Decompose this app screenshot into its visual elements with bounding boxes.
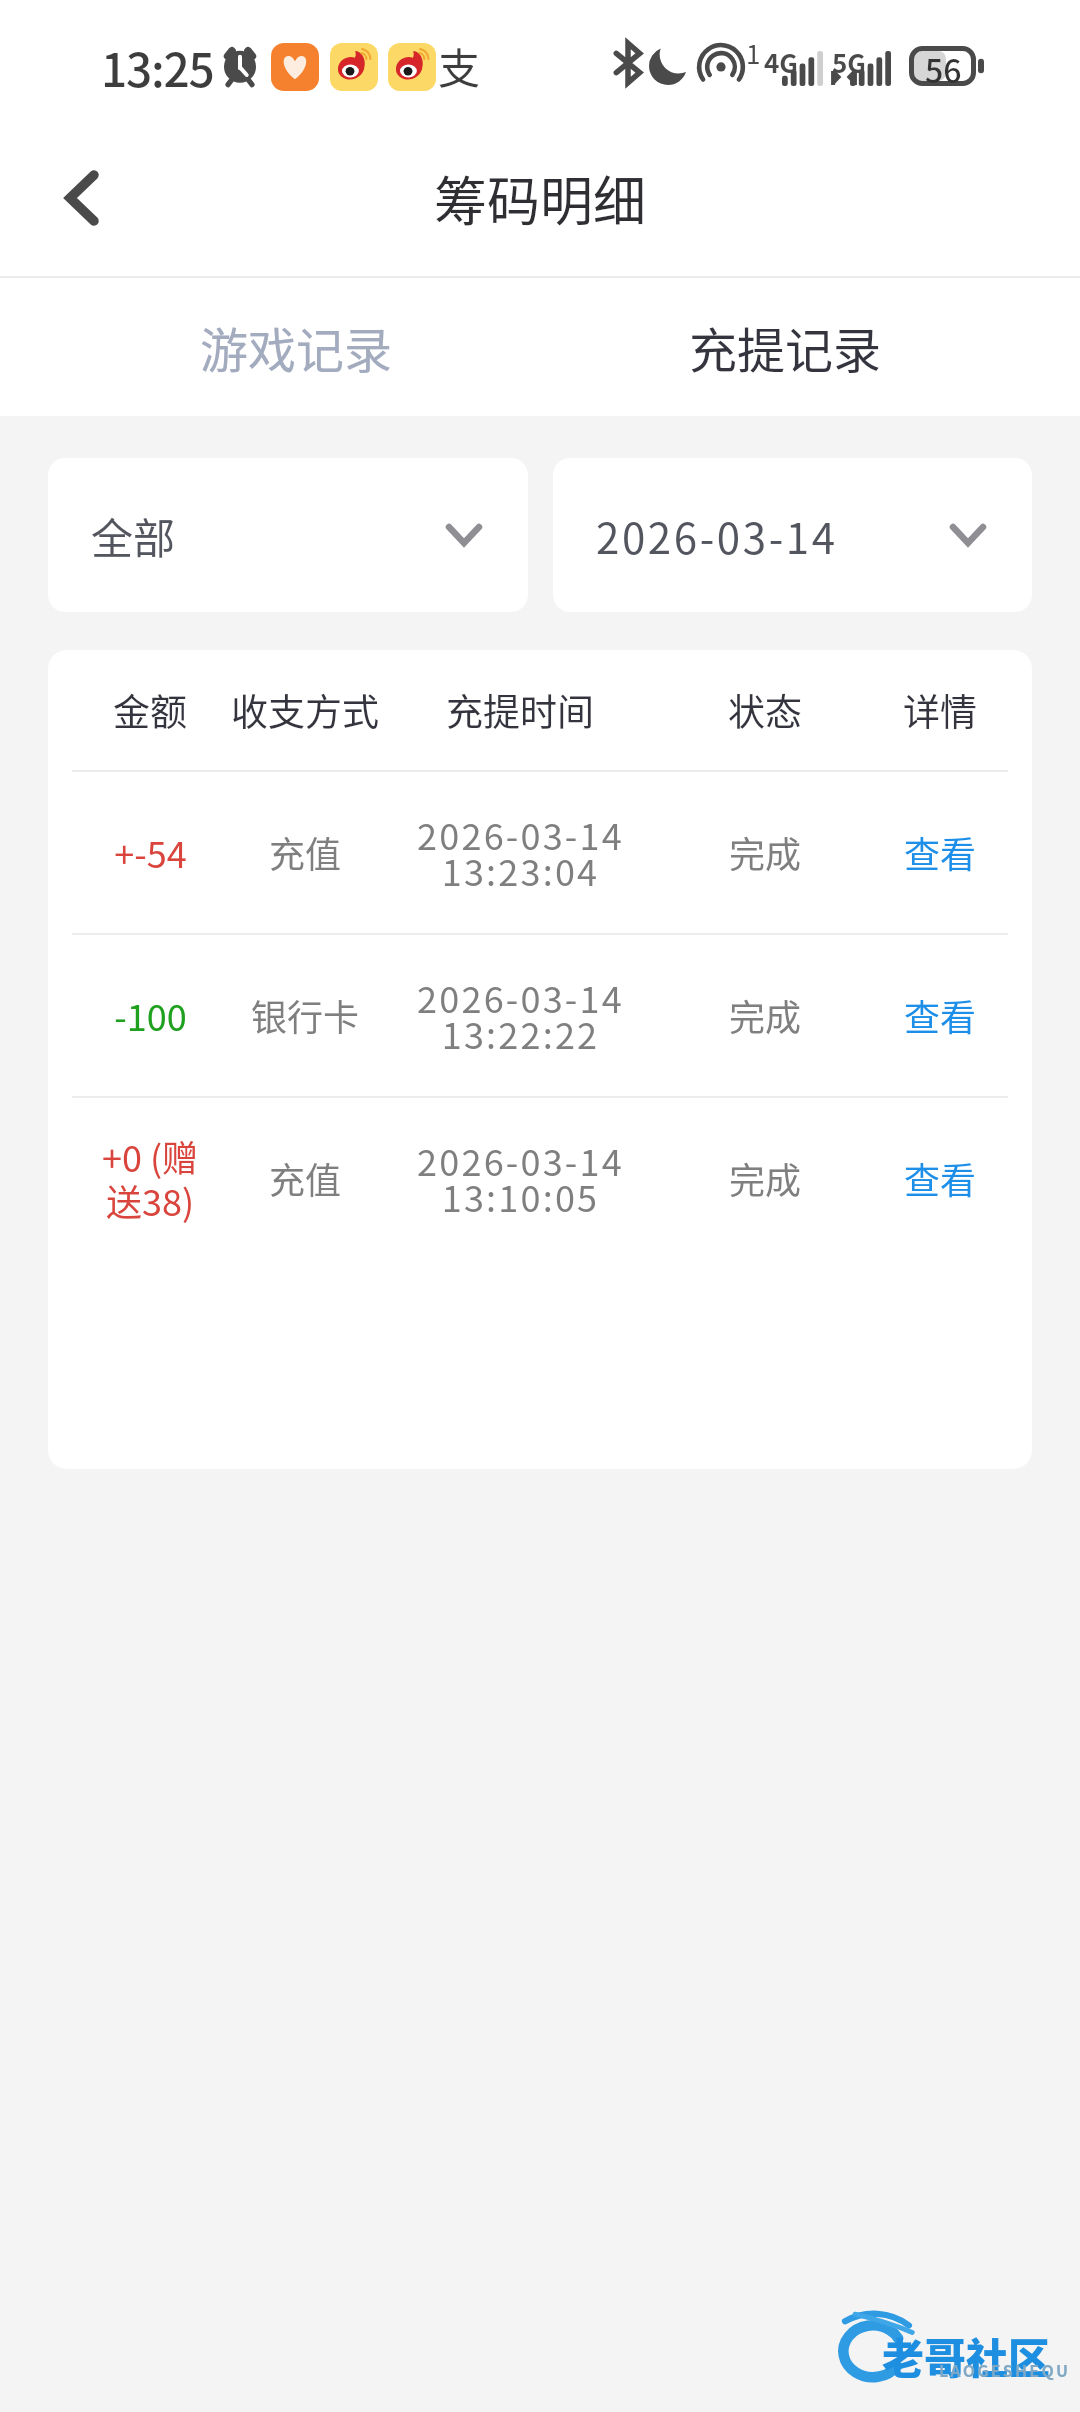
staticText: LAOGESHEQU (939, 2358, 1071, 2381)
staticText: +-54 (114, 826, 187, 878)
staticText: 查看 (904, 826, 977, 878)
staticText: 查看 (904, 989, 977, 1041)
staticText: 2026-03-14 13:10:05 (417, 1134, 624, 1222)
staticText: 2026-03-14 (596, 505, 838, 566)
button[interactable]: 查看 (880, 1134, 1001, 1222)
staticText: 状态 (728, 683, 802, 737)
staticText: 全部 (91, 505, 176, 566)
staticText: 支 (438, 35, 481, 96)
staticText: 收支方式 (231, 683, 379, 737)
staticText: 1 (746, 34, 761, 72)
button[interactable]: 2026-03-14 (553, 458, 1032, 612)
staticText: 筹码明细 (434, 160, 646, 237)
button[interactable]: 充提记录 (540, 278, 1080, 416)
button[interactable]: 查看 (880, 808, 1001, 896)
staticText: 金额 (113, 683, 187, 737)
staticText: +0 (赠送38) (95, 1130, 205, 1227)
staticText: 13:25 (101, 34, 214, 101)
button[interactable]: -100 (48, 935, 1032, 1096)
staticText: 4G (764, 43, 798, 81)
staticText: 完成 (729, 989, 802, 1041)
staticText: -100 (114, 989, 187, 1041)
staticText: 2026-03-14 13:23:04 (417, 808, 624, 896)
staticText: 查看 (904, 1152, 977, 1204)
staticText: 56 (925, 46, 962, 86)
staticText: 银行卡 (251, 989, 360, 1041)
staticText: 充值 (269, 1152, 342, 1204)
button[interactable]: 查看 (880, 971, 1001, 1059)
button[interactable]: 游戏记录 (0, 278, 540, 416)
staticText: 详情 (903, 683, 977, 737)
staticText: 游戏记录 (200, 312, 393, 382)
button[interactable]: Back (32, 148, 132, 248)
staticText: 充值 (269, 826, 342, 878)
button[interactable]: 全部 (48, 458, 528, 612)
button[interactable]: +0 (赠送38) (48, 1098, 1032, 1259)
staticText: 2026-03-14 13:22:22 (417, 971, 624, 1059)
staticText: 充提记录 (689, 312, 882, 382)
staticText: 老哥社区 (882, 2325, 1051, 2386)
staticText: 完成 (729, 1152, 802, 1204)
staticText: 充提时间 (446, 683, 594, 737)
staticText: 完成 (729, 826, 802, 878)
button[interactable]: +-54 (48, 772, 1032, 933)
staticText: 5G (832, 43, 866, 81)
